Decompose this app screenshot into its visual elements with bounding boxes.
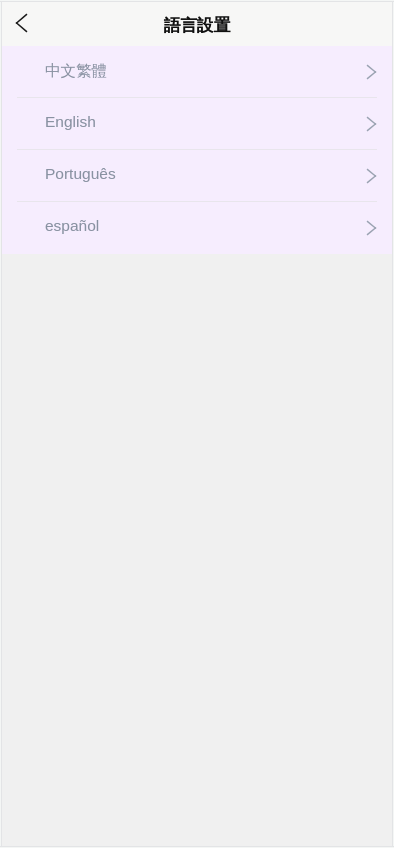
staticText: English xyxy=(45,113,96,130)
staticText: 中文繁體 xyxy=(45,61,107,81)
button[interactable]: 中文繁體 xyxy=(2,46,392,98)
button[interactable]: español xyxy=(2,202,392,254)
button[interactable]: English xyxy=(2,98,392,150)
staticText: español xyxy=(45,217,100,234)
button[interactable]: Back xyxy=(2,2,42,46)
staticText: Português xyxy=(45,165,116,182)
staticText: 語言設置 xyxy=(164,15,230,36)
button[interactable]: Português xyxy=(2,150,392,202)
staticText: 語言設置 xyxy=(164,15,230,36)
